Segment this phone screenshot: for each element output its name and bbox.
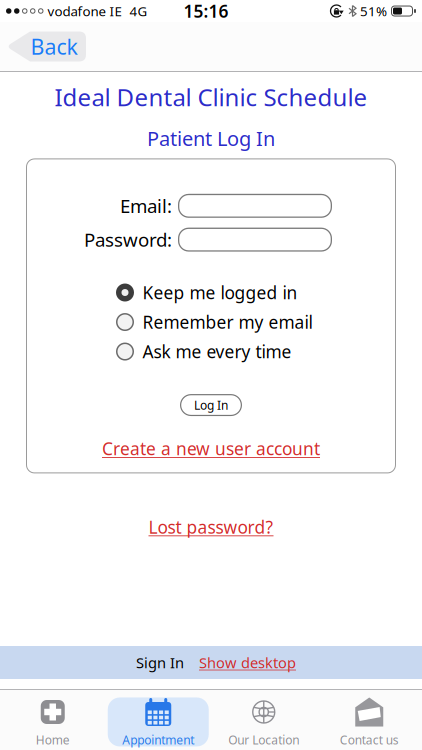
staticText: Show desktop [199,653,296,672]
button[interactable]: Remember my email [115,310,312,333]
staticText: Contact us [340,732,399,748]
staticText: Keep me logged in [142,281,297,304]
button[interactable]: Email [178,194,332,218]
button[interactable]: Back [8,31,86,61]
staticText: Back [30,32,77,61]
button[interactable]: Log In [180,394,242,416]
staticText: Appointment [122,732,194,748]
button[interactable]: Appointment [105,696,211,748]
button[interactable]: Contact us [316,696,422,748]
staticText: 4G [129,2,147,20]
staticText: Sign In [136,653,184,672]
staticText: Patient Log In [147,125,275,151]
staticText: Ask me every time [142,340,291,363]
staticText: vodafone IE [47,2,121,20]
button[interactable]: Our Location [211,696,316,748]
staticText: Password: [84,227,172,252]
staticText: Remember my email [142,310,312,333]
button[interactable]: Password [178,228,332,252]
staticText: Log In [194,397,228,413]
staticText: Email: [120,193,172,218]
staticText: Lost password? [148,515,273,538]
button[interactable]: Show desktop [199,653,296,672]
button[interactable]: Lost password? [148,515,273,538]
staticText: 15:16 [183,0,228,22]
button[interactable]: Create a new user account [102,437,320,460]
staticText: Our Location [228,732,299,748]
button[interactable]: Keep me logged in [115,281,297,304]
staticText: Create a new user account [102,437,320,460]
button[interactable]: Ask me every time [115,340,291,363]
button[interactable]: Sign In [136,653,184,672]
button[interactable]: Home [0,696,105,748]
staticText: Home [36,732,70,748]
staticText: 51% [360,2,387,20]
staticText: Ideal Dental Clinic Schedule [54,81,367,113]
